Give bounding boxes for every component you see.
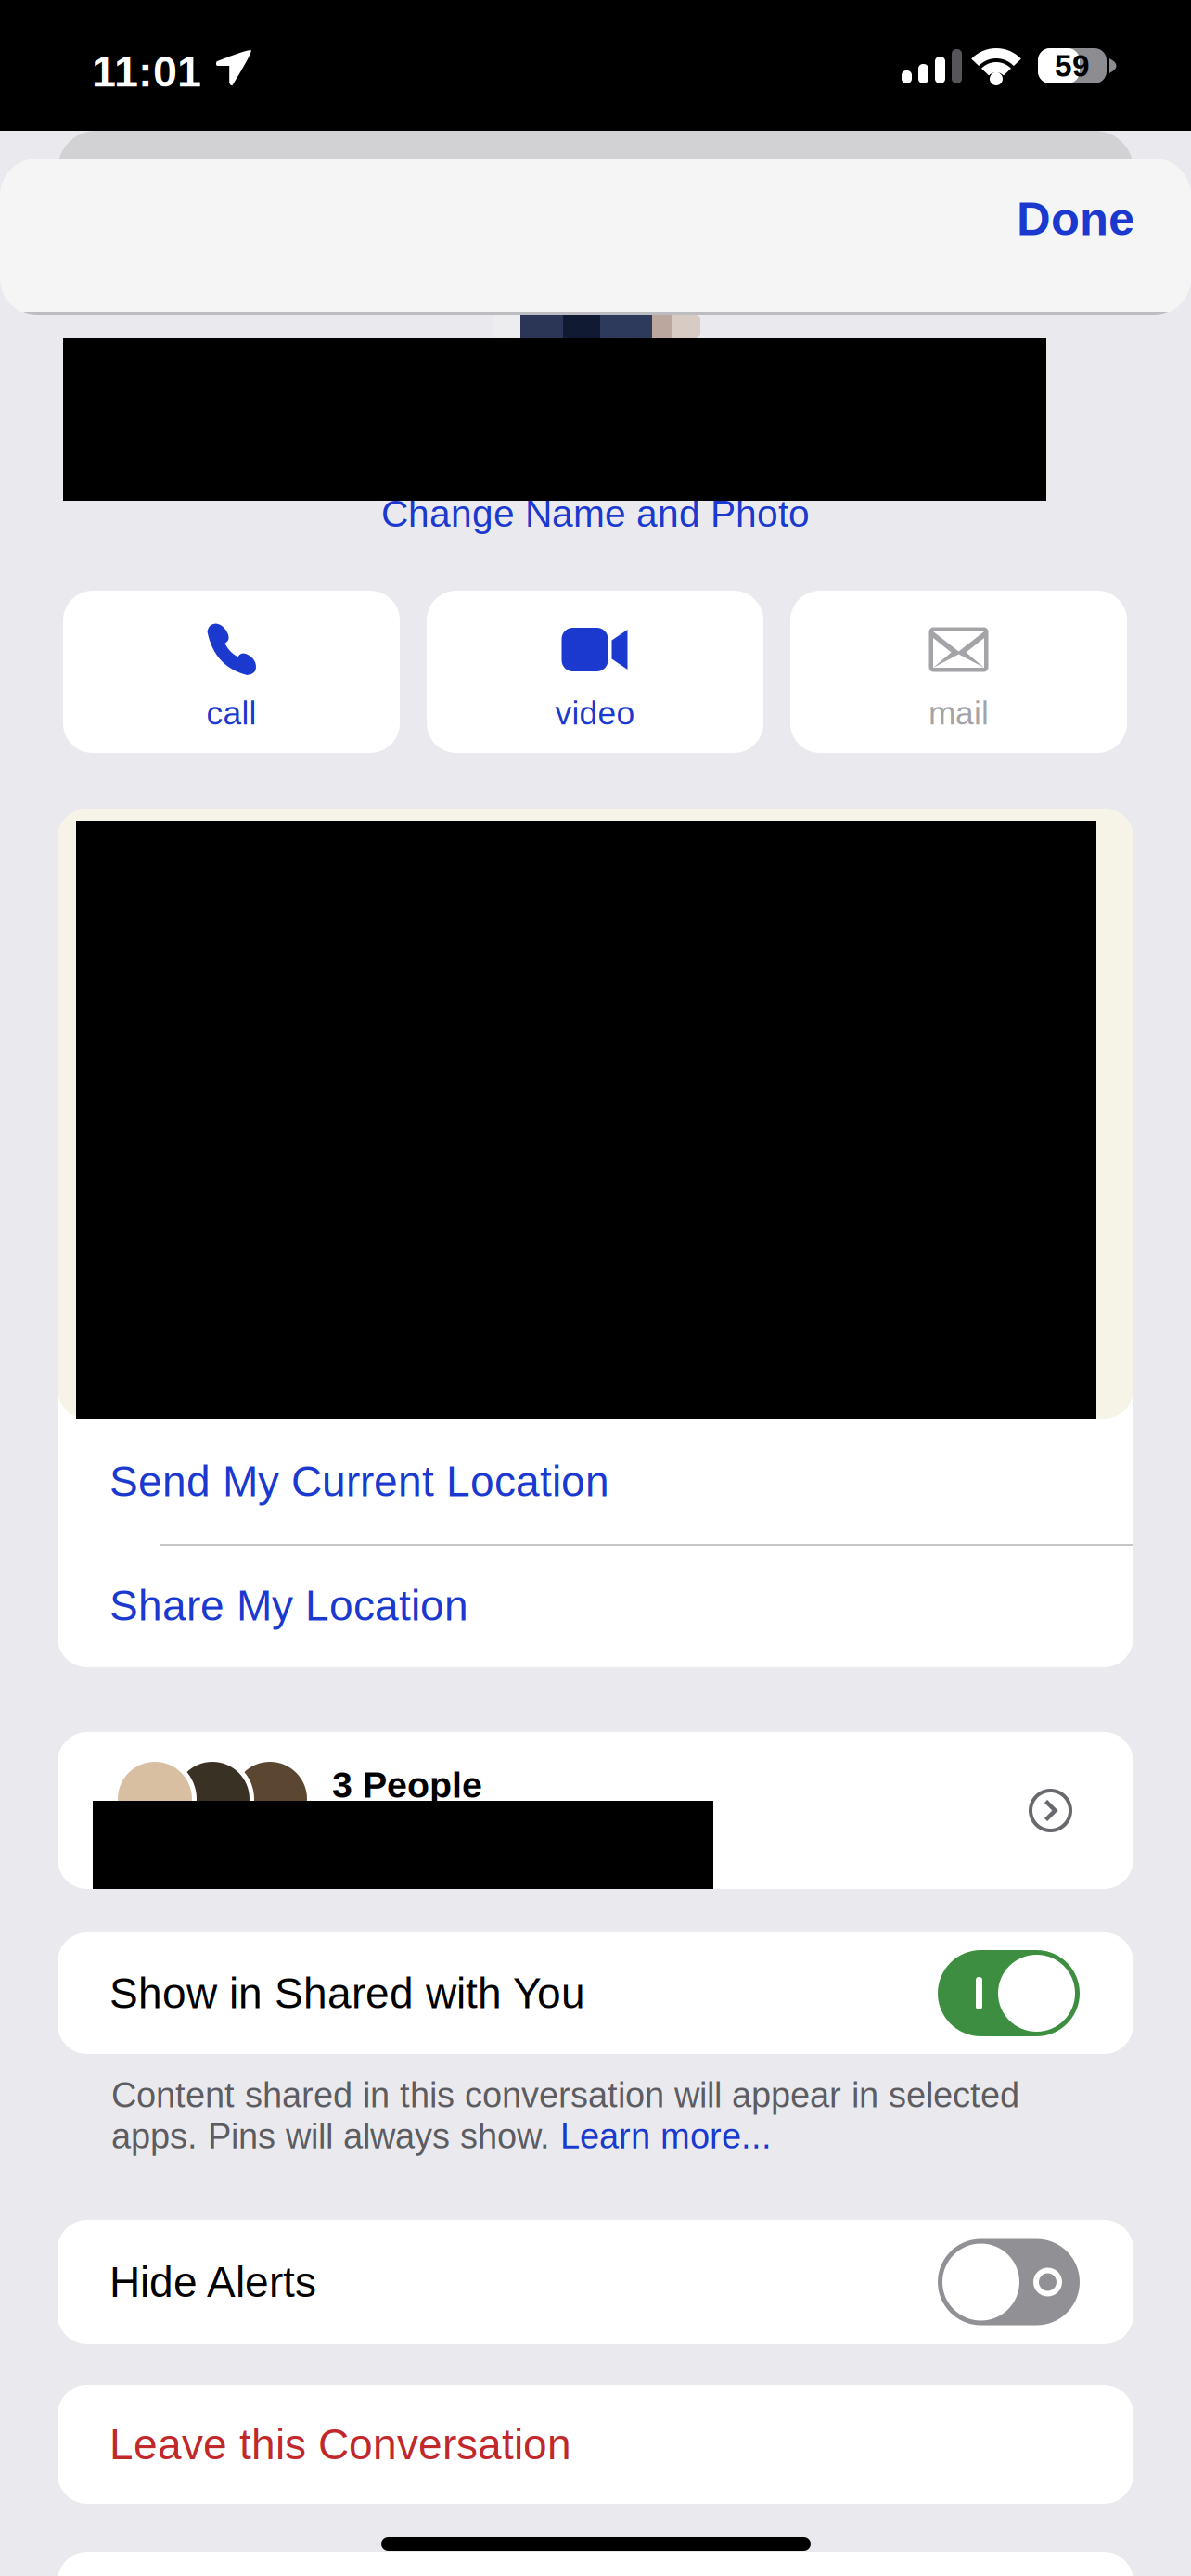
button[interactable]: mail [790, 591, 1127, 753]
button[interactable]: Share My Location [58, 1544, 1133, 1667]
button[interactable]: Send My Current Location [58, 1419, 1133, 1544]
staticText: Show in Shared with You [109, 1969, 585, 2017]
button[interactable]: Hide Alerts [58, 2220, 1133, 2344]
button[interactable]: Done [912, 154, 1134, 284]
staticText: 59 [1055, 49, 1090, 83]
staticText: mail [928, 695, 989, 731]
staticText: video [555, 695, 635, 731]
staticText: Leave this Conversation [109, 2420, 571, 2468]
staticText: Change Name and Photo [381, 493, 810, 535]
button[interactable]: Learn more... [560, 2117, 772, 2156]
staticText: 11:01 [92, 47, 201, 96]
staticText: Learn more... [560, 2117, 772, 2156]
staticText: call [206, 695, 256, 731]
staticText: Done [1017, 193, 1134, 245]
staticText: Hide Alerts [109, 2258, 316, 2306]
button[interactable]: call [63, 591, 400, 753]
button[interactable]: Leave this Conversation [58, 2385, 1133, 2512]
staticText: apps. Pins will always show. [111, 2117, 560, 2156]
staticText: Content shared in this conversation will… [111, 2075, 1019, 2115]
button[interactable]: video [427, 591, 763, 753]
staticText: Send My Current Location [109, 1458, 609, 1505]
button[interactable]: Show in Shared with You [58, 1932, 1133, 2054]
button[interactable]: 3 People [58, 1732, 1133, 1889]
staticText: 3 People [332, 1765, 482, 1805]
button[interactable]: Change Name and Photo [0, 486, 1191, 542]
staticText: Share My Location [109, 1582, 468, 1629]
